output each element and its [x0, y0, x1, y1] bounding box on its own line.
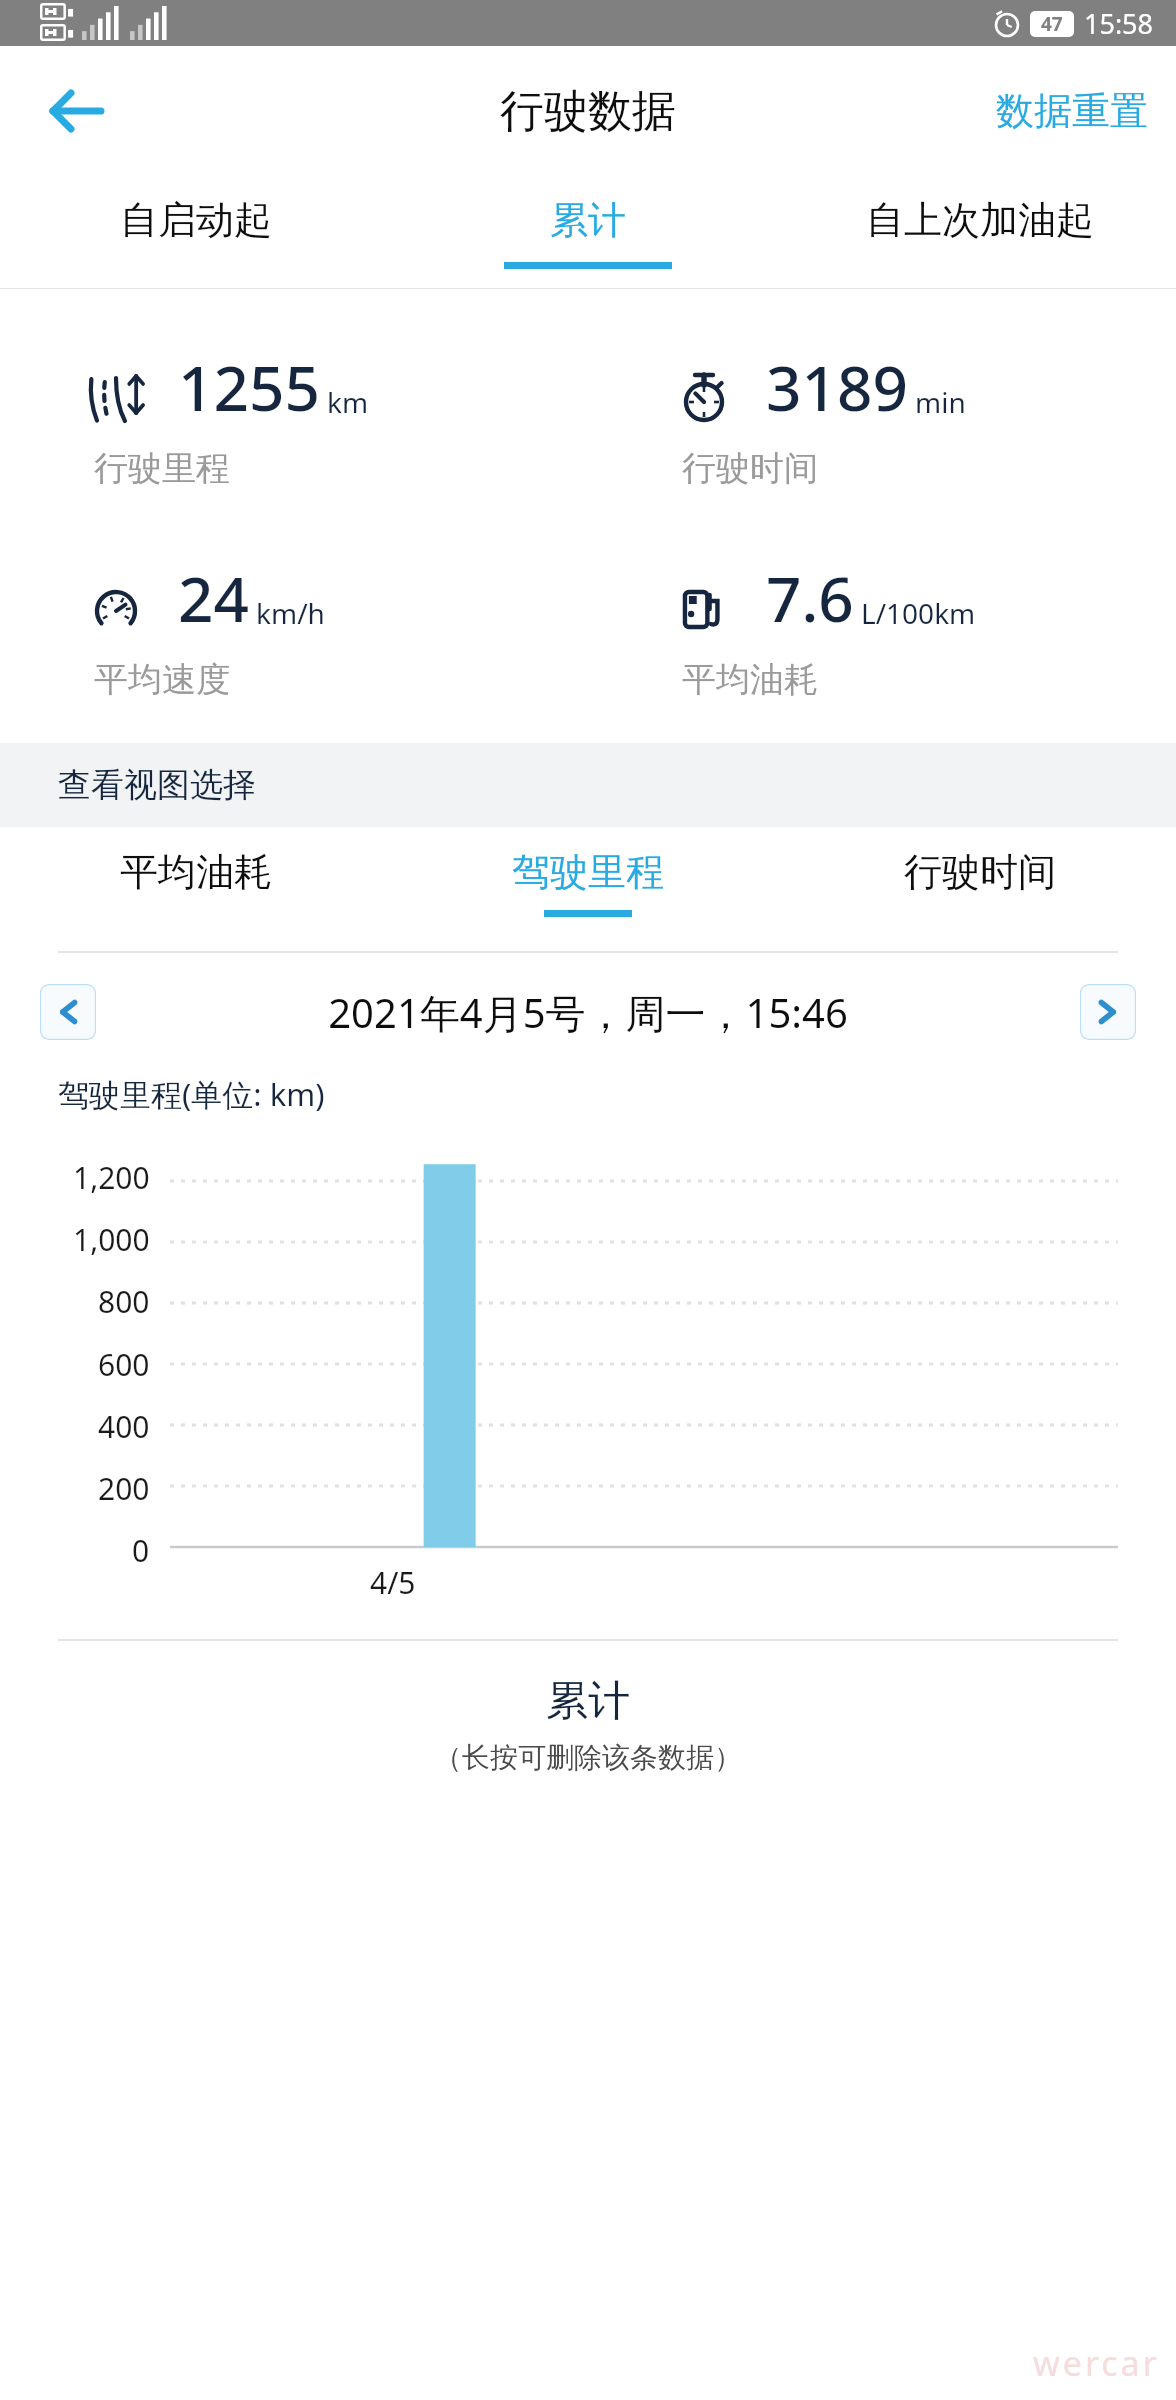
- staticText: 0: [132, 1530, 150, 1571]
- staticText: 平均油耗: [120, 848, 272, 896]
- button[interactable]: 平均油耗: [0, 827, 392, 937]
- staticText: 数据重置: [996, 87, 1148, 135]
- staticText: 行驶时间: [682, 447, 818, 490]
- staticText: 15:58: [1084, 5, 1154, 42]
- staticText: 驾驶里程(单位: km): [58, 1073, 325, 1115]
- staticText: 600: [98, 1344, 150, 1385]
- staticText: 驾驶里程: [512, 848, 664, 896]
- staticText: （长按可删除该条数据）: [434, 1740, 742, 1775]
- staticText: km: [327, 383, 369, 421]
- button[interactable]: 行驶时间: [784, 827, 1176, 937]
- button[interactable]: 自启动起: [0, 176, 392, 288]
- button[interactable]: 自上次加油起: [784, 176, 1176, 288]
- staticText: 3189: [766, 345, 908, 429]
- staticText: 7.6: [766, 556, 854, 640]
- staticText: 4/5: [370, 1562, 416, 1603]
- button[interactable]: 下一条: [1080, 984, 1136, 1040]
- staticText: 行驶里程: [94, 447, 230, 490]
- staticText: 查看视图选择: [58, 764, 256, 806]
- staticText: 2021年4月5号，周一，15:46: [96, 985, 1080, 1040]
- staticText: 47: [1041, 11, 1063, 37]
- button[interactable]: 驾驶里程: [392, 827, 784, 937]
- staticText: 800: [98, 1281, 150, 1322]
- button[interactable]: 数据重置: [968, 63, 1176, 159]
- button[interactable]: 累计: [392, 176, 784, 288]
- staticText: 1255: [178, 345, 320, 429]
- staticText: 自上次加油起: [866, 196, 1094, 244]
- staticText: 平均油耗: [682, 658, 818, 701]
- staticText: min: [915, 383, 966, 421]
- staticText: 400: [98, 1406, 150, 1447]
- staticText: km/h: [256, 594, 325, 632]
- staticText: L/100km: [861, 594, 976, 632]
- staticText: 平均速度: [94, 658, 230, 701]
- button[interactable]: 返回: [26, 63, 122, 159]
- button[interactable]: 上一条: [40, 984, 96, 1040]
- staticText: 累计: [550, 196, 626, 244]
- staticText: 自启动起: [120, 196, 272, 244]
- staticText: wercar: [1033, 2340, 1160, 2386]
- staticText: 累计: [546, 1675, 630, 1728]
- staticText: 200: [98, 1468, 150, 1509]
- staticText: 1,000: [73, 1219, 150, 1260]
- staticText: 24: [178, 556, 249, 640]
- staticText: 1,200: [73, 1157, 150, 1198]
- staticText: 行驶时间: [904, 848, 1056, 896]
- staticText: 行驶数据: [500, 84, 676, 139]
